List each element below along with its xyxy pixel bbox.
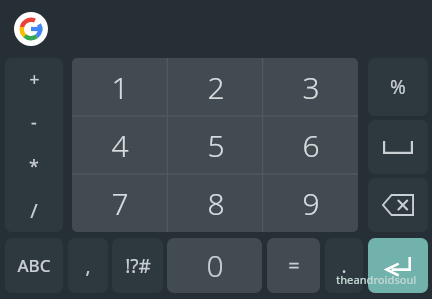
staticText: theandroidsoul [336, 272, 417, 287]
staticText: 7 [111, 183, 129, 224]
button[interactable]: Enter [368, 238, 428, 293]
staticText: , [85, 253, 91, 279]
button[interactable]: / [5, 188, 63, 232]
staticText: * [29, 154, 39, 179]
staticText: 3 [302, 67, 320, 108]
staticText: 9 [302, 183, 320, 224]
button[interactable]: 2 [168, 58, 263, 116]
staticText: . [341, 253, 347, 279]
button[interactable]: * [5, 144, 63, 188]
button[interactable]: 0 [167, 238, 262, 293]
staticText: ABC [17, 254, 51, 277]
button[interactable]: 1 [72, 58, 168, 116]
staticText: 0 [206, 245, 224, 286]
button[interactable]: - [5, 101, 63, 144]
staticText: - [31, 110, 37, 135]
button[interactable]: . [325, 238, 363, 293]
button[interactable]: 7 [72, 174, 168, 232]
button[interactable]: 6 [263, 116, 358, 174]
button[interactable]: , [68, 238, 108, 293]
button[interactable]: 4 [72, 116, 168, 174]
button[interactable]: + [5, 58, 63, 101]
staticText: 8 [207, 183, 225, 224]
button[interactable]: Google [14, 12, 48, 46]
staticText: / [30, 197, 38, 224]
staticText: = [288, 252, 300, 279]
staticText: 6 [302, 125, 320, 166]
staticText: + [29, 67, 40, 92]
button[interactable]: Backspace [368, 178, 428, 232]
staticText: 5 [207, 125, 225, 166]
button[interactable]: 5 [168, 116, 263, 174]
button[interactable]: Space [368, 120, 428, 174]
staticText: % [390, 74, 406, 100]
button[interactable]: 3 [263, 58, 358, 116]
button[interactable]: 9 [263, 174, 358, 232]
staticText: 4 [111, 125, 129, 166]
button[interactable]: % [368, 58, 428, 116]
staticText: !?# [125, 253, 151, 279]
button[interactable]: = [267, 238, 320, 293]
button[interactable]: ABC [5, 238, 63, 293]
button[interactable]: 8 [168, 174, 263, 232]
staticText: 2 [207, 67, 225, 108]
staticText: 1 [111, 67, 129, 108]
button[interactable]: !?# [112, 238, 163, 293]
